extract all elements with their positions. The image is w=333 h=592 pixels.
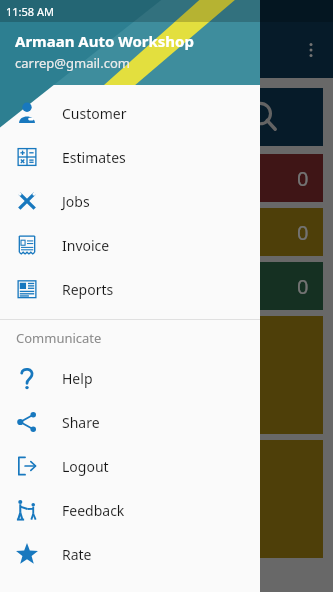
button[interactable]: Share xyxy=(0,400,260,444)
button[interactable]: Reports xyxy=(0,267,260,311)
staticText: 11:58 AM xyxy=(6,4,54,19)
staticText: Communicate xyxy=(16,329,102,347)
staticText: Help xyxy=(62,369,93,388)
staticText: Invoice xyxy=(62,236,110,255)
staticText: Estimates xyxy=(62,148,126,167)
button[interactable]: Rate xyxy=(0,532,260,576)
staticText: Armaan Auto Workshop xyxy=(15,31,194,51)
staticText: 8 xyxy=(22,492,45,546)
button[interactable]: Invoice xyxy=(0,223,260,267)
staticText: 0 xyxy=(22,368,45,422)
button[interactable]: Logout xyxy=(0,444,260,488)
staticText: Logout xyxy=(62,457,109,476)
staticText: carrep@gmail.com xyxy=(15,54,130,72)
staticText: Invoice xyxy=(22,452,80,475)
button[interactable]: Help xyxy=(0,356,260,400)
staticText: Estimates xyxy=(22,328,100,351)
button[interactable]: Feedback xyxy=(0,488,260,532)
button[interactable]: Jobs xyxy=(0,179,260,223)
button[interactable]: Estimates xyxy=(0,135,260,179)
staticText: Feedback xyxy=(62,501,125,520)
button[interactable]: Customer xyxy=(0,91,260,135)
staticText: 0 xyxy=(297,165,309,192)
staticText: Jobs xyxy=(62,192,90,211)
staticText: 0 xyxy=(297,273,309,300)
staticText: Pending xyxy=(24,222,83,242)
staticText: Rate xyxy=(62,545,92,564)
staticText: 0 xyxy=(297,219,309,246)
staticText: Share xyxy=(62,413,100,432)
staticText: Completed xyxy=(24,276,102,296)
staticText: Customer xyxy=(62,104,127,123)
staticText: Reports xyxy=(62,280,114,299)
staticText: Armaan Auto Co... xyxy=(14,39,162,62)
